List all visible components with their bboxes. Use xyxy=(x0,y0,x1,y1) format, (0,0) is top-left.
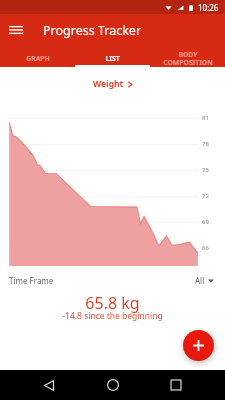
button[interactable]: Add xyxy=(183,330,214,361)
staticText: 75 xyxy=(202,166,209,174)
button[interactable]: All xyxy=(193,275,216,286)
staticText: 69 xyxy=(202,218,209,226)
staticText: 10:26 xyxy=(198,2,219,13)
staticText: 66 xyxy=(202,244,209,252)
staticText: LIST xyxy=(105,54,120,63)
staticText: 81 xyxy=(202,114,209,122)
button[interactable]: LIST xyxy=(75,46,150,67)
staticText: 78 xyxy=(202,140,209,148)
button[interactable]: Weight xyxy=(0,77,225,91)
button[interactable]: Recents xyxy=(161,370,191,400)
staticText: All xyxy=(195,275,205,286)
button[interactable]: Back xyxy=(34,370,64,400)
staticText: 65.8 kg xyxy=(0,292,225,314)
button[interactable]: Menu xyxy=(0,14,32,46)
staticText: Time Frame xyxy=(9,275,54,286)
staticText: 72 xyxy=(202,192,209,200)
button[interactable]: Home xyxy=(98,370,128,400)
button[interactable]: GRAPH xyxy=(0,46,75,67)
staticText: Progress Tracker xyxy=(43,22,142,39)
button[interactable]: BODY COMPOSITION xyxy=(150,46,225,67)
staticText: -14.8 since the beginning xyxy=(0,310,225,322)
staticText: GRAPH xyxy=(26,54,50,63)
staticText: Weight xyxy=(93,78,124,90)
staticText: BODY COMPOSITION xyxy=(163,50,213,67)
